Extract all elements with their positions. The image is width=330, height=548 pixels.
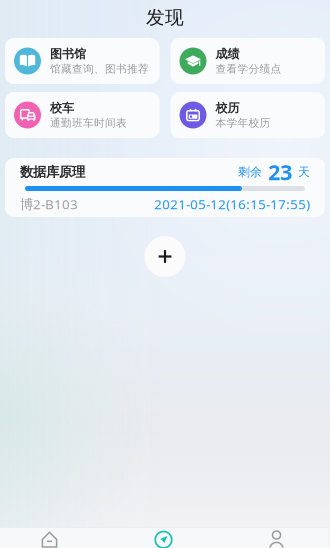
staticText: 博2-B103 [20,195,78,213]
button[interactable]: Home [0,527,100,548]
button[interactable]: 成绩 [170,38,325,84]
staticText: 本学年校历 [215,116,270,129]
staticText: 通勤班车时间表 [50,116,127,129]
staticText: 天 [298,165,310,179]
staticText: 查看学分绩点 [215,62,281,75]
button[interactable]: 图书馆 [5,38,159,84]
staticText: 馆藏查询、图书推荐 [50,62,149,75]
staticText: 校历 [215,101,239,115]
staticText: 2021-05-12(16:15-17:55) [154,195,310,213]
button[interactable]: Add [144,236,185,277]
staticText: 数据库原理 [20,164,85,180]
staticText: 23 [262,158,298,186]
button[interactable]: 校车 [5,92,159,138]
button[interactable]: Discover [108,527,218,548]
staticText: 发现 [146,6,184,29]
button[interactable]: 校历 [170,92,325,138]
staticText: 图书馆 [50,47,86,61]
button[interactable]: Profile [221,527,330,548]
button[interactable]: 数据库原理 [5,158,325,217]
staticText: 成绩 [215,47,239,61]
staticText: 剩余 [238,165,262,179]
staticText: 校车 [50,101,74,115]
